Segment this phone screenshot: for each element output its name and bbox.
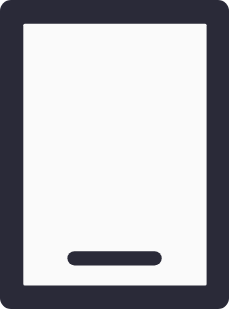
button[interactable]: Tablet device illustration: [0, 0, 229, 309]
